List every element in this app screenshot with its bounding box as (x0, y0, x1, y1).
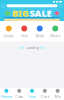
button[interactable]: Messages (59, 4, 62, 7)
staticText: BIG (12, 7, 29, 19)
staticText: Home (1, 94, 12, 99)
staticText: Mall (36, 33, 44, 38)
button[interactable]: Home (0, 89, 13, 99)
staticText: Loading (25, 45, 38, 50)
button[interactable]: Big Sale promotion (4, 8, 60, 21)
staticText: Deals (4, 33, 14, 38)
button[interactable]: Scan (2, 4, 5, 7)
staticText: More (50, 33, 60, 38)
staticText: Cats (15, 94, 23, 99)
button[interactable]: Cart (38, 89, 51, 99)
button[interactable]: Cats (13, 89, 26, 99)
staticText: Me (55, 94, 61, 99)
staticText: Live (28, 94, 35, 99)
button[interactable]: Mall (32, 25, 47, 38)
staticText: Hot (21, 33, 27, 38)
button[interactable]: Deals (1, 25, 16, 38)
staticText: SALE (30, 7, 52, 19)
button[interactable]: Hot (16, 25, 32, 38)
button[interactable]: Live (26, 89, 38, 99)
button[interactable]: More (47, 25, 63, 38)
button[interactable]: Me (51, 89, 64, 99)
staticText: Cart (41, 94, 49, 99)
